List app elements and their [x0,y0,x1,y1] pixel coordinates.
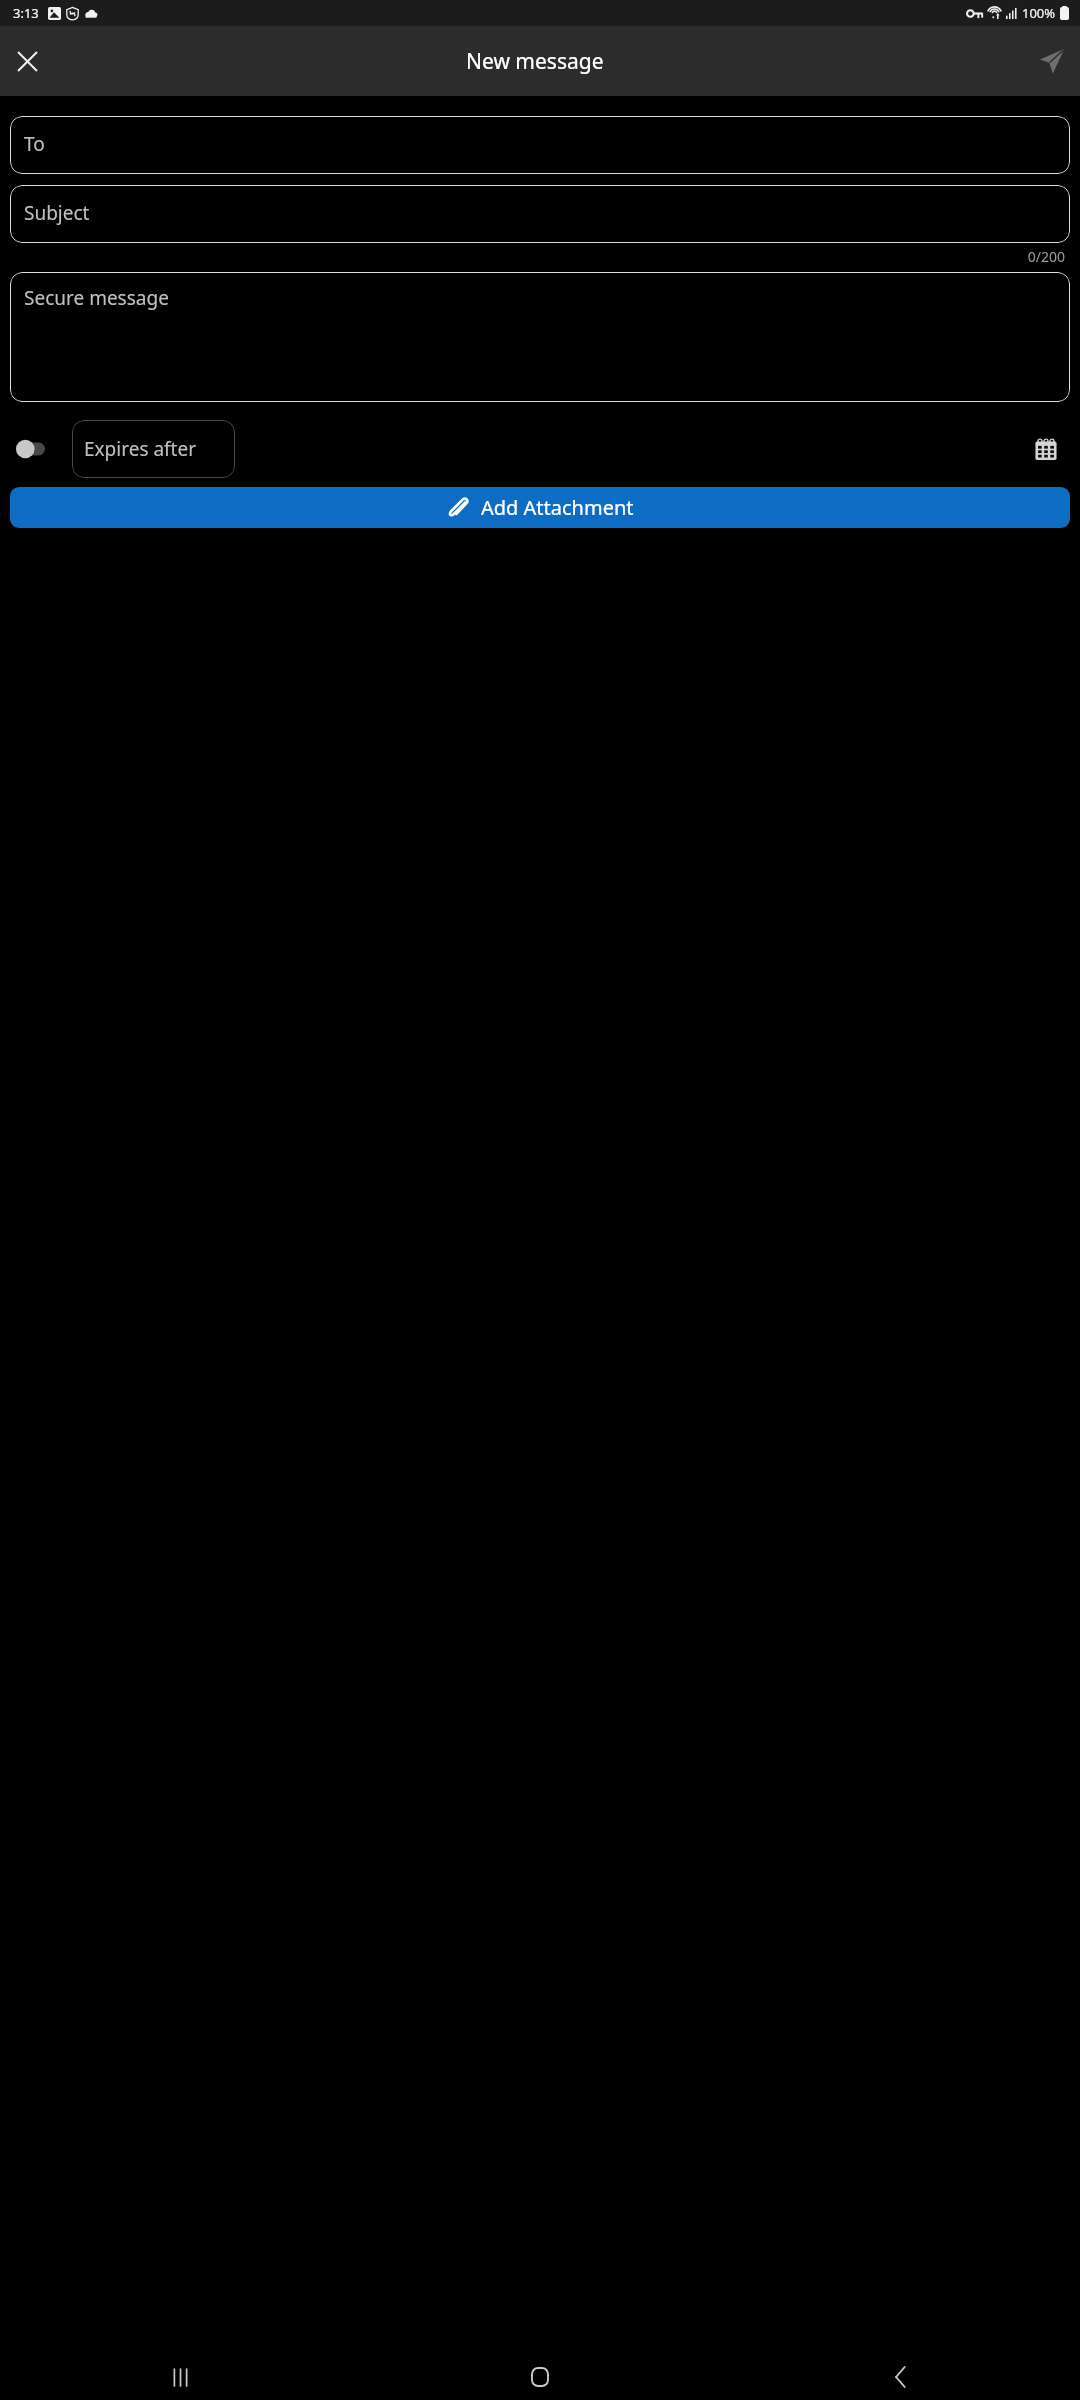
staticText: To [24,131,45,157]
button[interactable]: Secure message [10,272,1070,402]
staticText: Secure message [24,285,169,311]
button[interactable]: Back [720,2354,1080,2400]
button[interactable]: Send [1028,37,1076,85]
button[interactable]: To [10,116,1070,174]
button[interactable]: Recent apps [0,2354,360,2400]
staticText: 0/200 [0,247,1065,266]
staticText: Expires after [84,436,197,462]
staticText: 3:13 [13,4,39,22]
staticText: Subject [24,200,90,226]
staticText: New message [466,47,604,76]
button[interactable]: Home [360,2354,720,2400]
button[interactable]: Expires after [72,420,235,478]
button[interactable]: Pick expiry date [1024,427,1068,471]
staticText: Add Attachment [481,494,634,521]
button[interactable]: Close [3,37,51,85]
button[interactable]: Add Attachment [10,487,1070,528]
button[interactable]: Subject [10,185,1070,243]
staticText: 100% [1022,4,1056,22]
button[interactable]: Expiry toggle [11,429,61,469]
